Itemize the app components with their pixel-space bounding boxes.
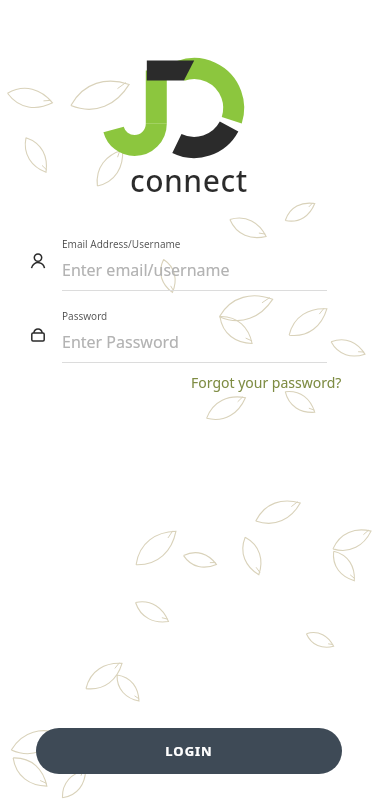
other: Email bbox=[28, 251, 48, 271]
staticText: Forgot your password? bbox=[191, 373, 342, 392]
button[interactable]: Password bbox=[28, 309, 327, 363]
staticText: Email Address/Username bbox=[62, 237, 181, 251]
staticText: Enter email/username bbox=[62, 259, 230, 281]
button[interactable]: Forgot your password? bbox=[189, 371, 344, 394]
staticText: Password bbox=[62, 309, 108, 323]
staticText: LOGIN bbox=[165, 742, 213, 760]
other: Password bbox=[28, 323, 48, 343]
staticText: connect bbox=[130, 160, 248, 201]
button[interactable]: LOGIN bbox=[36, 728, 342, 774]
button[interactable]: Email bbox=[28, 237, 327, 291]
staticText: Enter Password bbox=[62, 331, 179, 353]
